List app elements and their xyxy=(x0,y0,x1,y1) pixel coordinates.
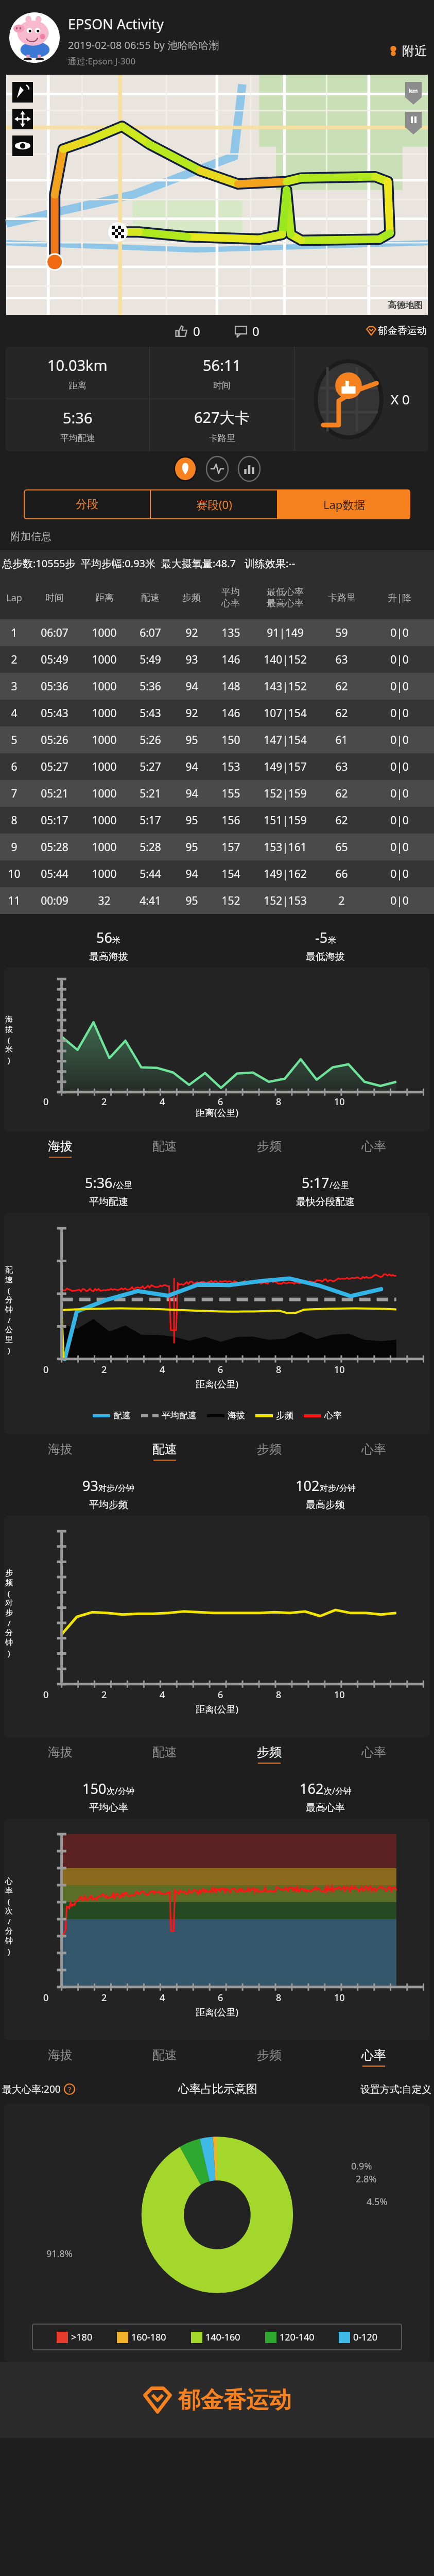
staticText: 627大卡 xyxy=(194,407,250,428)
button[interactable]: 93 xyxy=(0,1471,217,1516)
button[interactable]: 220 xyxy=(4,1819,430,2040)
button[interactable]: 郁金香运动 xyxy=(366,325,427,337)
button[interactable]: 海拔 xyxy=(8,2040,112,2074)
button[interactable]: 102 xyxy=(217,1471,434,1516)
button[interactable]: Like xyxy=(175,323,200,340)
button[interactable]: Map view xyxy=(174,456,197,482)
staticText: 107|154 xyxy=(264,706,307,721)
button[interactable]: 海拔 xyxy=(8,1131,112,1165)
staticText: 5:17 xyxy=(140,813,161,828)
button[interactable]: 步频 xyxy=(217,1434,321,1468)
button[interactable]: 8 xyxy=(0,807,434,834)
button[interactable]: 3:00 xyxy=(4,1213,430,1434)
button[interactable]: 1 xyxy=(0,619,434,646)
button[interactable]: 11 xyxy=(0,887,434,914)
staticText: 60 xyxy=(48,1020,58,1021)
staticText: 05:44 xyxy=(41,867,68,882)
button[interactable]: 627大卡 xyxy=(150,399,294,451)
button[interactable]: Pan xyxy=(12,109,33,129)
staticText: 距离 xyxy=(69,380,86,391)
staticText: 0|0 xyxy=(390,733,409,748)
button[interactable]: Visibility xyxy=(12,135,33,156)
button[interactable]: 150 xyxy=(0,1774,217,1819)
button[interactable]: Lap数据 xyxy=(278,489,410,519)
button[interactable]: 56:11 xyxy=(150,347,294,399)
staticText: 钟 xyxy=(5,1936,13,1946)
button[interactable]: 200 xyxy=(4,1516,430,1737)
button[interactable]: 4 xyxy=(0,700,434,726)
staticText: 153 xyxy=(221,759,240,774)
staticText: 平均配速 xyxy=(60,433,95,444)
button[interactable]: 郁金香运动 xyxy=(143,2385,291,2414)
button[interactable]: Chart view xyxy=(238,456,261,482)
staticText: 6 xyxy=(11,759,18,774)
button[interactable]: -5 xyxy=(217,923,434,968)
staticText: 94 xyxy=(185,867,198,882)
button[interactable]: 心率 xyxy=(321,1737,426,1771)
button[interactable]: 步频 xyxy=(217,1737,321,1771)
staticText: 0|0 xyxy=(390,893,409,908)
button[interactable]: 附近 xyxy=(388,43,427,59)
button[interactable]: 0.9% xyxy=(4,2104,430,2362)
button[interactable]: 心率 xyxy=(321,1434,426,1468)
button[interactable]: 5:36 xyxy=(0,1168,217,1213)
button[interactable]: 56 xyxy=(0,923,217,968)
button[interactable]: 配速 xyxy=(112,2040,217,2074)
staticText: 升|降 xyxy=(388,591,411,604)
staticText: 海拔 xyxy=(228,1410,245,1421)
button[interactable]: 分段 xyxy=(24,489,150,519)
staticText: 8 xyxy=(276,1688,282,1701)
button[interactable]: Pause xyxy=(405,112,422,134)
button[interactable]: 100 xyxy=(4,968,430,1131)
button[interactable]: 心率 xyxy=(321,2040,426,2074)
button[interactable]: GPS xyxy=(6,75,428,315)
button[interactable]: 7 xyxy=(0,780,434,807)
staticText: 10 xyxy=(334,1688,345,1701)
staticText: 海拔 xyxy=(48,1442,73,1457)
staticText: ( xyxy=(8,1035,10,1045)
staticText: 步频 xyxy=(182,592,201,604)
staticText: 05:36 xyxy=(41,679,68,694)
button[interactable]: 5:36 xyxy=(6,399,149,451)
button[interactable]: 5:17 xyxy=(217,1168,434,1213)
staticText: 2.8% xyxy=(356,2173,377,2185)
button[interactable]: 心率 xyxy=(321,1131,426,1165)
staticText: 分 xyxy=(5,1628,13,1638)
staticText: 5:21 xyxy=(140,786,161,801)
staticText: 6 xyxy=(218,1991,223,2004)
button[interactable]: 9 xyxy=(0,834,434,860)
button[interactable]: 6 xyxy=(0,753,434,780)
button[interactable]: 海拔 xyxy=(8,1434,112,1468)
button[interactable]: 2 xyxy=(0,646,434,673)
button[interactable]: 10.03km xyxy=(6,347,149,399)
staticText: 1000 xyxy=(92,733,117,748)
staticText: 0.9% xyxy=(351,2160,372,2173)
button[interactable]: Distance markers xyxy=(405,82,422,105)
button[interactable]: 5 xyxy=(0,726,434,753)
button[interactable]: 配速 xyxy=(112,1434,217,1468)
button[interactable]: 步频 xyxy=(217,2040,321,2074)
button[interactable]: 配速 xyxy=(112,1737,217,1771)
staticText: 对步/分钟 xyxy=(98,1482,134,1494)
staticText: 平均配速 xyxy=(162,1410,197,1421)
button[interactable]: 步频 xyxy=(217,1131,321,1165)
button[interactable]: X 0 xyxy=(294,347,428,451)
button[interactable]: GPS xyxy=(12,82,33,103)
button[interactable]: 最大心率:200 xyxy=(2,2082,75,2096)
staticText: 93 xyxy=(82,1476,98,1495)
button[interactable]: EPSON Activity xyxy=(9,9,427,75)
staticText: 4:41 xyxy=(140,893,161,908)
button[interactable]: 海拔 xyxy=(8,1737,112,1771)
staticText: 频 xyxy=(5,1578,13,1588)
button[interactable]: 10 xyxy=(0,860,434,887)
button[interactable]: Comment xyxy=(234,323,259,340)
button[interactable]: 赛段(0) xyxy=(151,489,277,519)
button[interactable]: Heart rate view xyxy=(206,456,229,482)
button[interactable]: 配速 xyxy=(112,1131,217,1165)
button[interactable]: 3 xyxy=(0,673,434,700)
staticText: 8 xyxy=(276,1363,282,1376)
staticText: 62 xyxy=(335,706,348,721)
staticText: 10 xyxy=(48,1071,58,1072)
button[interactable]: 162 xyxy=(217,1774,434,1819)
staticText: ) xyxy=(8,1946,10,1956)
